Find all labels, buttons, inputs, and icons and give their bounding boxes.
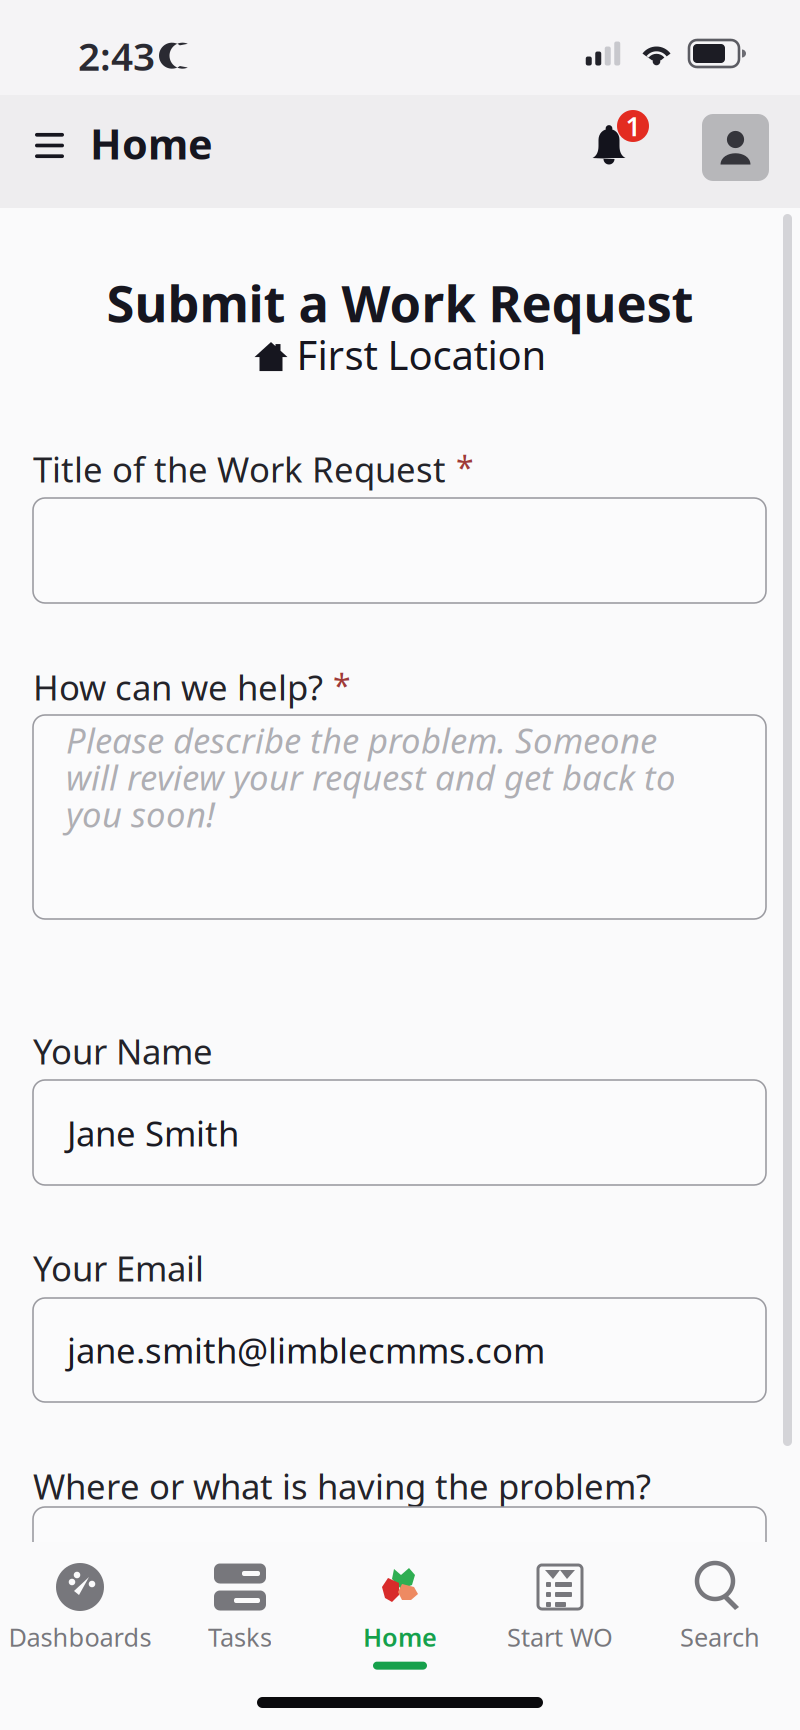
staticText: 2:43	[78, 30, 155, 81]
staticText: you soon!	[66, 791, 215, 837]
button[interactable]: Home	[320, 1562, 480, 1672]
staticText: Your Name	[33, 1028, 213, 1074]
staticText: *	[456, 446, 474, 488]
staticText: First Location	[296, 328, 546, 381]
staticText: Please describe the problem. Someone	[66, 717, 657, 763]
staticText: Tasks	[208, 1620, 272, 1654]
button[interactable]: Notifications	[593, 95, 665, 171]
button[interactable]: Profile	[702, 114, 769, 181]
button[interactable]: Menu	[14, 111, 85, 180]
staticText: How can we help?	[33, 664, 323, 710]
staticText: Dashboards	[8, 1620, 151, 1654]
staticText: Your Email	[33, 1245, 204, 1291]
staticText: Start WO	[507, 1620, 613, 1654]
staticText: *	[333, 664, 351, 706]
staticText: Where or what is having the problem?	[33, 1463, 651, 1509]
staticText: will review your request and get back to	[66, 754, 676, 800]
staticText: Title of the Work Request	[33, 446, 446, 492]
staticText: Search	[680, 1620, 760, 1654]
staticText: Jane Smith	[67, 1110, 239, 1156]
button[interactable]: Search	[640, 1562, 800, 1672]
staticText: Submit a Work Request	[106, 269, 693, 336]
staticText: jane.smith@limblecmms.com	[67, 1327, 545, 1373]
staticText: 1	[625, 108, 640, 144]
button[interactable]: Dashboards	[0, 1562, 160, 1672]
button[interactable]: Start WO	[480, 1562, 640, 1672]
staticText: Home	[363, 1620, 437, 1654]
button[interactable]: Tasks	[160, 1562, 320, 1672]
staticText: Home	[90, 116, 213, 171]
